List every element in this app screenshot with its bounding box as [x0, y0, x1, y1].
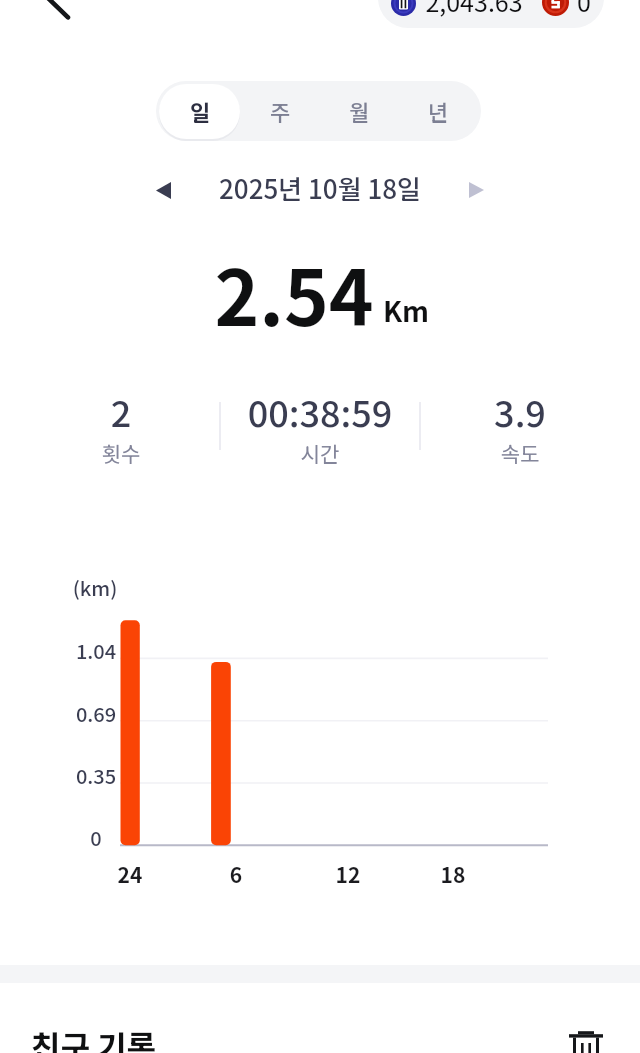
staticText: 일 [190, 95, 211, 127]
staticText: 0 [554, 0, 614, 19]
staticText: 0 [36, 823, 156, 852]
staticText: 00:38:59 [220, 385, 420, 437]
button[interactable]: 월 [319, 81, 400, 141]
button[interactable]: Back [30, 0, 88, 29]
staticText: 3.9 [420, 385, 620, 437]
staticText: 년 [428, 95, 449, 127]
button[interactable] [420, 396, 620, 462]
staticText: 1.04 [36, 636, 156, 665]
button[interactable]: 일 [160, 81, 241, 141]
button[interactable]: Next day [453, 167, 499, 213]
staticText: 0.35 [36, 761, 156, 790]
staticText: 2 [21, 385, 221, 437]
staticText: 월 [349, 95, 370, 127]
staticText: 6 [196, 859, 276, 889]
staticText: 주 [270, 95, 291, 127]
staticText: 2,043.63 [394, 0, 554, 19]
staticText: 2.54 [114, 238, 474, 348]
staticText: 시간 [220, 438, 420, 468]
staticText: 0.69 [36, 699, 156, 728]
staticText: 속도 [420, 438, 620, 468]
button[interactable]: Delete [566, 1029, 606, 1053]
staticText: Km [346, 290, 466, 331]
staticText: 횟수 [21, 438, 221, 468]
button[interactable]: Previous day [140, 167, 186, 213]
staticText: (km) [35, 573, 155, 602]
button[interactable] [378, 0, 604, 28]
staticText: 24 [90, 859, 170, 889]
button[interactable] [220, 396, 420, 462]
button[interactable]: 주 [240, 81, 321, 141]
staticText: 18 [413, 859, 493, 889]
staticText: 친구 기록 [31, 1022, 157, 1053]
button[interactable] [21, 396, 221, 462]
staticText: 2025년 10월 18일 [140, 169, 500, 207]
button[interactable]: 년 [398, 81, 479, 141]
staticText: 12 [308, 859, 388, 889]
